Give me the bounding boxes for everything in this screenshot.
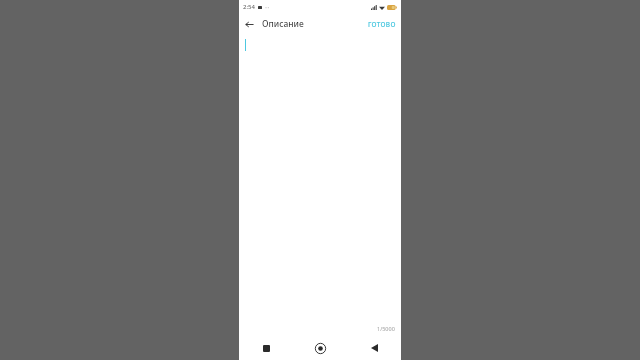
button[interactable] <box>239 34 401 336</box>
button[interactable]: Обзор <box>239 336 293 360</box>
staticText: 2:54 <box>243 3 255 11</box>
button[interactable]: ГОТОВО <box>363 16 401 33</box>
staticText: Описание <box>262 18 304 30</box>
staticText: ГОТОВО <box>368 20 396 29</box>
button[interactable]: Главный экран <box>293 336 347 360</box>
button[interactable]: Назад <box>239 14 259 34</box>
button[interactable]: Назад <box>347 336 401 360</box>
staticText: 1/5000 <box>377 325 395 332</box>
